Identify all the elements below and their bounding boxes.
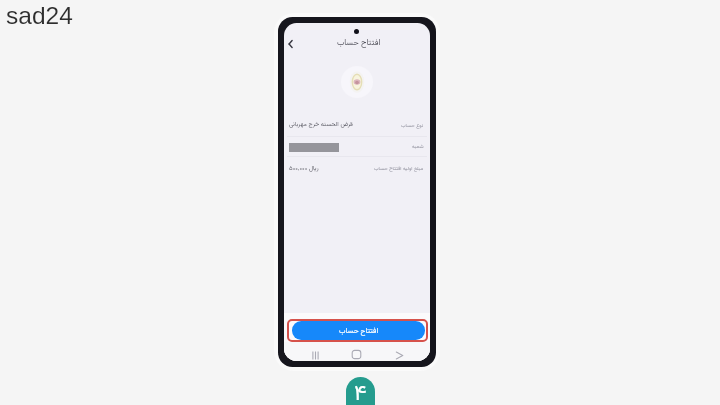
button[interactable]: Home [350, 348, 362, 360]
button[interactable]: Back [285, 38, 297, 50]
button[interactable]: افتتاح حساب [292, 321, 425, 340]
staticText: ۵۰۰٬۰۰۰ ریال [289, 164, 319, 174]
staticText: افتتاح حساب [337, 37, 381, 48]
staticText: sad24 [6, 2, 73, 29]
staticText: مبلغ اولیه افتتاح حساب [374, 165, 424, 173]
staticText: شعبه [412, 143, 424, 151]
button[interactable]: Recent apps [309, 349, 321, 361]
staticText: نوع حساب [401, 122, 424, 130]
staticText: قرض الحسنه خرج مهربانی [289, 120, 353, 130]
staticText: افتتاح حساب [339, 325, 379, 337]
button[interactable]: Back [393, 349, 405, 361]
staticText: ۴ [354, 377, 367, 405]
